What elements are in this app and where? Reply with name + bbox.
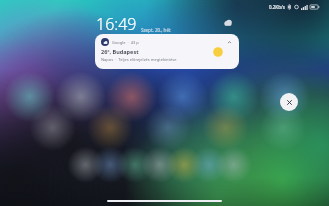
- button[interactable]: Google · 43 p: [95, 34, 239, 69]
- staticText: 26°, Budapest: [101, 48, 139, 55]
- staticText: Google · 43 p: [112, 40, 139, 45]
- button[interactable]: Weather: [222, 17, 234, 29]
- staticText: 0.2Kb/s: [269, 4, 285, 10]
- staticText: 16:49: [96, 13, 137, 35]
- staticText: Szept. 20., hét: [141, 27, 171, 33]
- button[interactable]: Collapse: [225, 38, 233, 46]
- staticText: Napos · Teljes előrejelzés megtekintése: [101, 57, 177, 62]
- button[interactable]: Close: [280, 93, 298, 111]
